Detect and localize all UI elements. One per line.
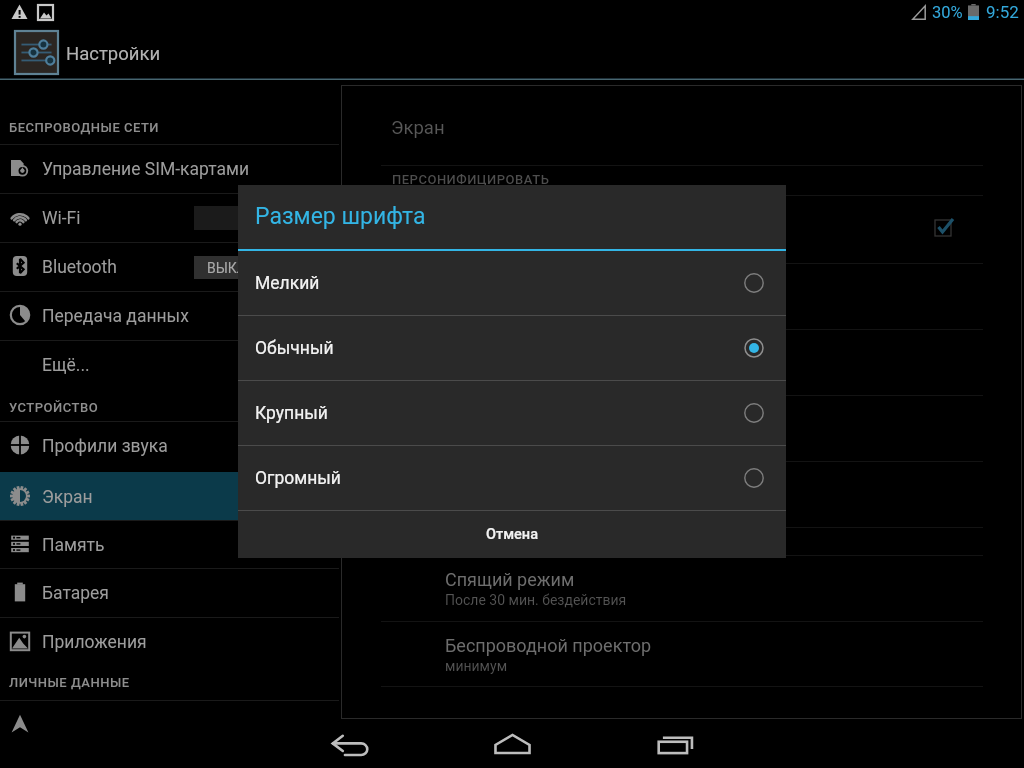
button[interactable]: Профили звука <box>0 421 339 470</box>
staticText: Управление SIM-картами <box>42 159 250 180</box>
button[interactable]: Батарея <box>0 568 339 617</box>
staticText: Размер шрифта <box>255 203 426 230</box>
button[interactable]: Память <box>0 520 339 569</box>
button[interactable]: Спящий режим <box>341 555 1020 621</box>
staticText: Экран <box>391 117 445 139</box>
button[interactable]: Обычный <box>238 316 786 380</box>
button[interactable]: Back <box>270 722 430 768</box>
button[interactable] <box>0 700 339 749</box>
staticText: ВЫКЛ. <box>207 260 251 276</box>
staticText: УСТРОЙСТВО <box>9 400 99 415</box>
staticText: Беспроводной проектор <box>445 635 652 656</box>
staticText: 9:52 <box>986 2 1019 22</box>
staticText: БЕСПРОВОДНЫЕ СЕТИ <box>9 120 160 135</box>
button[interactable]: Wi-Fi <box>0 193 339 242</box>
staticText: Bluetooth <box>42 257 117 278</box>
staticText: Мелкий <box>255 273 320 294</box>
staticText: 30% <box>932 3 963 22</box>
staticText: минимум <box>445 658 508 674</box>
button[interactable]: Ещё... <box>0 340 339 389</box>
staticText: Крупный <box>255 403 328 424</box>
button[interactable]: Беспроводной проектор <box>341 621 1020 687</box>
button[interactable]: Home <box>432 722 592 768</box>
button[interactable]: Огромный <box>238 446 786 510</box>
staticText: Отмена <box>486 526 539 543</box>
button[interactable] <box>341 329 1020 395</box>
staticText: ЛИЧНЫЕ ДАННЫЕ <box>9 675 130 690</box>
staticText: Ещё... <box>42 355 90 376</box>
button[interactable]: Recent apps <box>594 722 754 768</box>
button[interactable]: Мелкий <box>238 251 786 315</box>
staticText: Настройки <box>66 43 161 65</box>
button[interactable] <box>341 395 1020 461</box>
staticText: Память <box>42 535 105 556</box>
staticText: Передача данных <box>42 306 189 327</box>
staticText: Приложения <box>42 632 147 653</box>
staticText: Обычный <box>255 338 334 359</box>
staticText: Спящий режим <box>445 569 575 590</box>
button[interactable]: Экран <box>0 472 339 521</box>
button[interactable] <box>341 263 1020 329</box>
staticText: После 30 мин. бездействия <box>445 592 627 608</box>
staticText: Батарея <box>42 583 109 604</box>
button[interactable]: Управление SIM-картами <box>0 144 339 193</box>
button[interactable]: Отмена <box>238 511 786 558</box>
button[interactable]: Bluetooth <box>0 242 339 291</box>
staticText: Wi-Fi <box>42 208 81 229</box>
staticText: Профили звука <box>42 436 168 457</box>
staticText: Экран <box>42 487 93 508</box>
staticText: Огромный <box>255 468 341 489</box>
button[interactable]: Передача данных <box>0 291 339 340</box>
button[interactable] <box>341 195 1020 261</box>
button[interactable]: Крупный <box>238 381 786 445</box>
staticText: ПЕРСОНИФИЦИРОВАТЬ <box>392 172 550 187</box>
button[interactable]: Приложения <box>0 617 339 666</box>
